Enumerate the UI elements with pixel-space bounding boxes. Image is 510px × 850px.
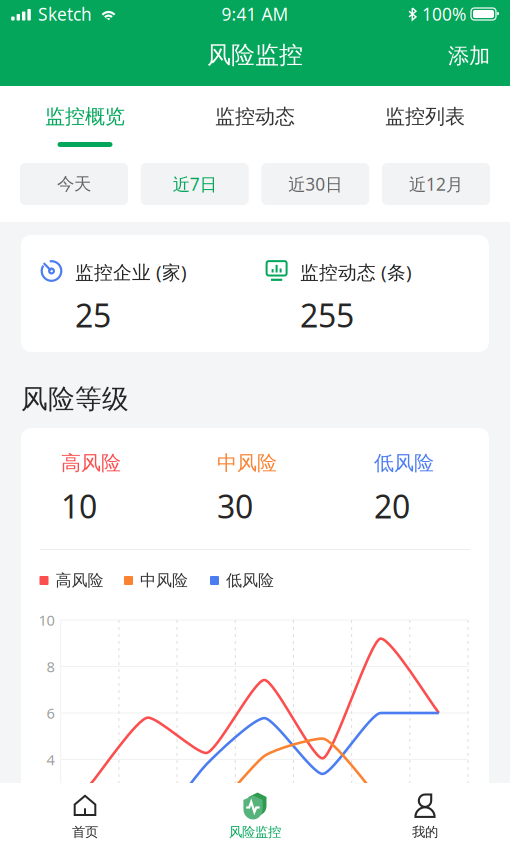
- staticText: 6: [46, 703, 54, 723]
- button[interactable]: 近7日: [141, 163, 249, 205]
- button[interactable]: 监控概览: [0, 86, 170, 153]
- staticText: 20: [374, 485, 410, 527]
- staticText: 8: [46, 657, 54, 676]
- staticText: 100%: [422, 2, 466, 25]
- button[interactable]: 近30日: [261, 163, 369, 205]
- staticText: 4: [46, 750, 54, 769]
- button[interactable]: 今天: [20, 163, 128, 205]
- staticText: 我的: [412, 824, 438, 840]
- staticText: 中风险: [140, 571, 188, 590]
- staticText: 监控概览: [45, 104, 125, 129]
- button[interactable]: 我的: [340, 783, 510, 850]
- button[interactable]: 近12月: [382, 163, 490, 205]
- button[interactable]: 监控动态: [170, 86, 340, 153]
- staticText: 高风险: [55, 571, 103, 590]
- staticText: 近12月: [409, 172, 463, 195]
- staticText: 风险监控: [229, 824, 281, 840]
- button[interactable]: 首页: [0, 783, 170, 850]
- staticText: 9:41 AM: [221, 2, 288, 25]
- staticText: 高风险: [61, 451, 121, 475]
- staticText: 风险监控: [207, 40, 303, 70]
- staticText: 近7日: [173, 172, 217, 195]
- staticText: 监控动态 (条): [300, 260, 412, 284]
- staticText: 25: [75, 294, 111, 336]
- staticText: 近30日: [288, 172, 342, 195]
- staticText: 中风险: [217, 451, 277, 475]
- staticText: 添加: [448, 43, 490, 69]
- staticText: 监控企业 (家): [75, 260, 187, 284]
- staticText: Sketch: [38, 2, 92, 25]
- button[interactable]: 添加: [428, 28, 510, 86]
- staticText: 今天: [57, 173, 91, 195]
- staticText: 风险等级: [21, 383, 129, 415]
- staticText: 监控动态: [215, 104, 295, 129]
- staticText: 10: [38, 610, 54, 630]
- staticText: 首页: [72, 824, 98, 840]
- button[interactable]: 风险监控: [170, 783, 340, 850]
- staticText: 低风险: [374, 451, 434, 475]
- staticText: 10: [61, 485, 97, 527]
- staticText: 监控列表: [385, 104, 465, 129]
- staticText: 低风险: [226, 571, 274, 590]
- button[interactable]: 监控列表: [340, 86, 510, 153]
- staticText: 30: [217, 485, 253, 527]
- staticText: 255: [300, 294, 354, 336]
